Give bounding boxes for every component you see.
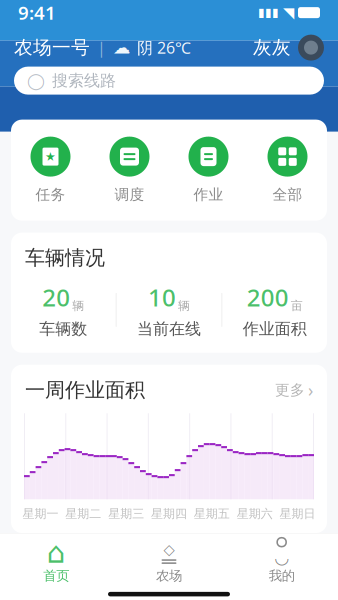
staticText: 更多	[275, 381, 305, 399]
staticText: 阴 26℃	[137, 37, 191, 58]
staticText: 调度	[114, 186, 144, 204]
staticText: 星期五	[194, 506, 230, 521]
button[interactable]: 更多	[275, 378, 313, 401]
staticText: ›	[308, 378, 313, 401]
staticText: 车辆情况	[25, 246, 105, 270]
staticText: 任务	[35, 186, 65, 204]
staticText: 车辆数	[39, 319, 87, 339]
staticText: ★	[45, 150, 56, 163]
button[interactable]: 全部	[248, 137, 327, 204]
staticText: 星期六	[237, 506, 273, 521]
button[interactable]: 调度	[90, 137, 169, 204]
staticText: 星期四	[151, 506, 187, 521]
staticText: ▮▮▮	[258, 6, 279, 19]
button[interactable]: ★	[11, 137, 90, 204]
button[interactable]: 作业	[169, 137, 248, 204]
staticText: 农场	[156, 567, 182, 584]
staticText: 一周作业面积	[25, 378, 145, 402]
staticText: 作业面积	[243, 319, 307, 339]
button[interactable]: 灰灰	[253, 35, 324, 61]
button[interactable]: ⌂	[0, 541, 113, 584]
staticText: ◇	[163, 541, 174, 558]
button[interactable]: ◯	[14, 67, 324, 95]
staticText: 灰灰	[253, 36, 291, 59]
staticText: 星期三	[108, 506, 144, 521]
staticText: ◥	[283, 4, 294, 21]
staticText: 星期二	[65, 506, 101, 521]
staticText: 亩	[291, 298, 303, 313]
staticText: 9:41	[18, 0, 56, 25]
staticText: 20	[42, 281, 70, 313]
button[interactable]: ◡	[225, 541, 338, 584]
staticText: |	[97, 37, 106, 58]
staticText: 搜索线路	[52, 71, 116, 90]
staticText: 全部	[272, 186, 302, 204]
staticText: 星期一	[22, 506, 58, 521]
staticText: ☁	[113, 38, 130, 57]
button[interactable]: ◇	[113, 541, 225, 584]
staticText: ⌂	[47, 536, 66, 569]
staticText: 当前在线	[137, 319, 201, 339]
staticText: ◯	[27, 71, 45, 90]
staticText: ◡	[274, 548, 289, 567]
staticText: 200	[247, 281, 289, 313]
staticText: 我的	[269, 567, 295, 584]
staticText: 辆	[178, 298, 190, 313]
button[interactable]: 农场一号	[14, 36, 191, 59]
staticText: 作业	[193, 186, 223, 204]
staticText: 首页	[43, 567, 69, 584]
staticText: 农场一号	[14, 36, 90, 59]
staticText: 星期日	[280, 506, 316, 521]
staticText: 辆	[72, 298, 84, 313]
staticText: 10	[148, 281, 176, 313]
